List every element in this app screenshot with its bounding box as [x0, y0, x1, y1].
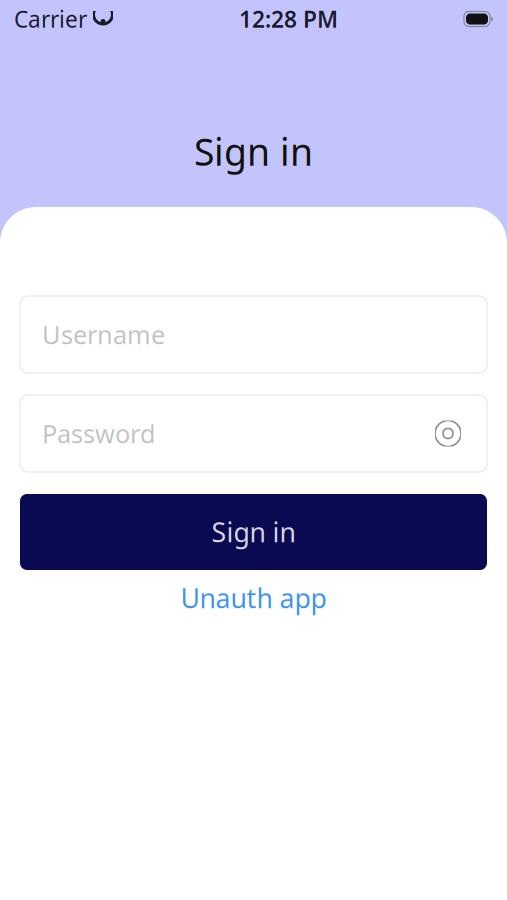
staticText: Sign in — [211, 514, 295, 550]
staticText: Sign in — [194, 126, 313, 176]
button[interactable]: Sign in — [20, 494, 487, 570]
staticText: Username — [42, 318, 165, 351]
staticText: Carrier — [14, 4, 87, 34]
staticText: Unauth app — [180, 580, 326, 616]
staticText: Password — [42, 417, 156, 450]
button[interactable]: Unauth app — [20, 577, 487, 619]
staticText: 12:28 PM — [239, 4, 338, 34]
button[interactable]: Show password — [431, 416, 465, 450]
